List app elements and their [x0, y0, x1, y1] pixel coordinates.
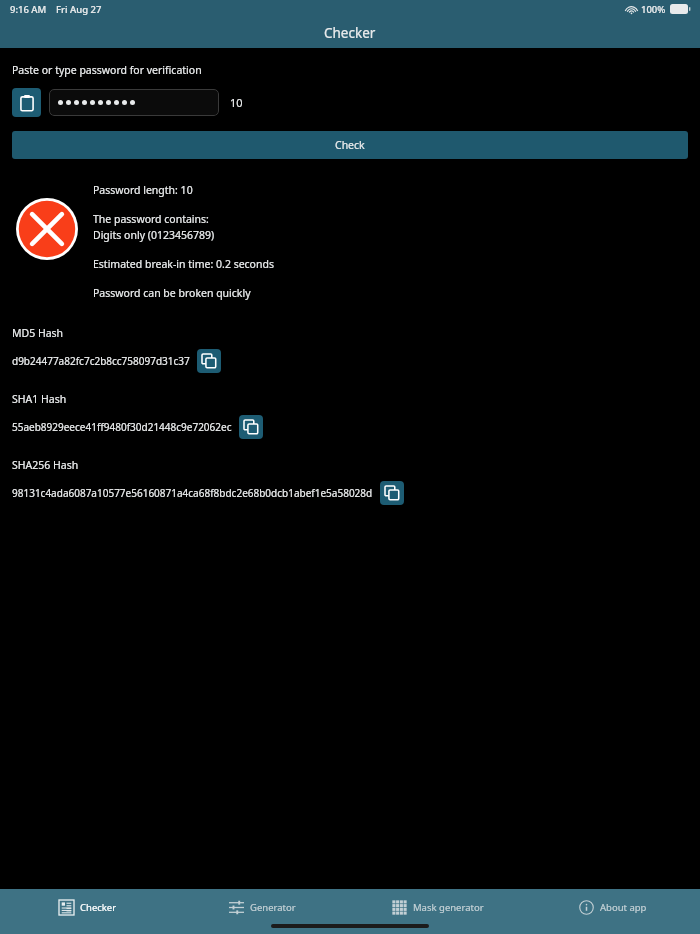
staticText: MD5 Hash: [12, 326, 64, 340]
staticText: 98131c4ada6087a10577e56160871a4ca68f8bdc…: [12, 486, 373, 500]
staticText: SHA1 Hash: [12, 392, 67, 406]
staticText: 55aeb8929eece41ff9480f30d21448c9e72062ec: [12, 420, 232, 434]
staticText: Password can be broken quickly: [93, 286, 251, 300]
staticText: Check: [335, 138, 365, 152]
staticText: Generator: [250, 901, 296, 914]
button[interactable]: Copy SHA1 Hash: [239, 415, 263, 439]
staticText: Paste or type password for verification: [12, 63, 202, 77]
button[interactable]: Copy SHA256 Hash: [380, 481, 404, 505]
staticText: Checker: [80, 901, 117, 914]
staticText: 10: [230, 95, 243, 110]
button[interactable]: Paste from clipboard: [12, 88, 41, 117]
button[interactable]: [49, 89, 219, 116]
staticText: Mask generator: [413, 901, 484, 914]
staticText: The password contains:: [93, 212, 209, 226]
staticText: Checker: [324, 24, 376, 42]
staticText: 100%: [641, 3, 666, 16]
staticText: Digits only (0123456789): [93, 228, 215, 242]
button[interactable]: Generator: [175, 900, 350, 915]
staticText: SHA256 Hash: [12, 458, 79, 472]
staticText: d9b24477a82fc7c2b8cc758097d31c37: [12, 354, 190, 368]
staticText: Estimated break-in time: 0.2 seconds: [93, 257, 274, 271]
button[interactable]: Mask generator: [350, 900, 525, 915]
button[interactable]: About app: [525, 900, 700, 915]
button[interactable]: Checker: [0, 900, 175, 915]
staticText: About app: [600, 901, 647, 914]
staticText: 9:16 AM: [10, 3, 47, 16]
button[interactable]: Copy MD5 Hash: [197, 349, 221, 373]
button[interactable]: Check: [12, 131, 688, 159]
staticText: Password length: 10: [93, 183, 193, 197]
staticText: Fri Aug 27: [56, 3, 102, 16]
